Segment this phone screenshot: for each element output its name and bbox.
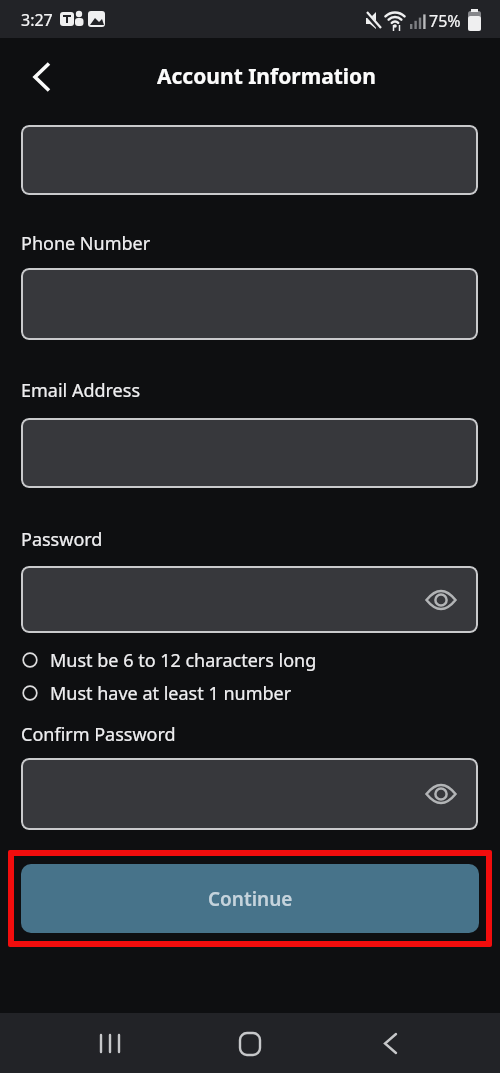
button[interactable] bbox=[21, 268, 478, 340]
button[interactable] bbox=[360, 1025, 420, 1061]
staticText: Continue bbox=[208, 886, 293, 912]
staticText: Email Address bbox=[21, 378, 141, 403]
button[interactable] bbox=[21, 566, 478, 633]
staticText: Must be 6 to 12 characters long bbox=[50, 648, 317, 673]
staticText: Account Information bbox=[157, 62, 376, 91]
button[interactable] bbox=[21, 418, 478, 488]
staticText: Password bbox=[21, 527, 103, 552]
staticText: Confirm Password bbox=[21, 722, 176, 747]
button[interactable] bbox=[21, 758, 478, 830]
staticText: 3:27 bbox=[21, 9, 53, 31]
staticText: Phone Number bbox=[21, 231, 151, 256]
button[interactable] bbox=[20, 55, 64, 99]
button[interactable] bbox=[220, 1025, 280, 1061]
staticText: 75% bbox=[429, 10, 461, 32]
staticText: Must have at least 1 number bbox=[50, 681, 292, 706]
button[interactable] bbox=[80, 1025, 140, 1061]
button[interactable]: Continue bbox=[21, 864, 479, 933]
button[interactable] bbox=[21, 125, 478, 195]
